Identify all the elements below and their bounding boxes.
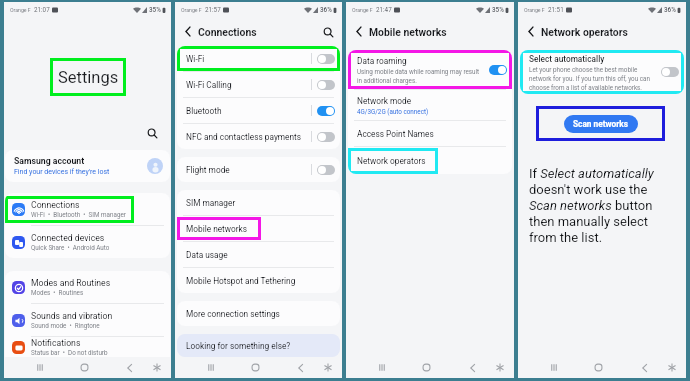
staticText: Quick Share • Android Auto [31, 244, 110, 251]
button[interactable]: Home [413, 357, 440, 378]
button[interactable]: Toggle [661, 67, 679, 77]
staticText: Sounds and vibration [31, 311, 113, 321]
staticText: 21:07 [34, 6, 50, 13]
button[interactable]: Notifications [5, 337, 170, 357]
staticText: Modes and Routines [31, 278, 111, 288]
staticText: Orange F [181, 7, 202, 13]
staticText: Network operators [357, 156, 426, 166]
staticText: Orange F [10, 7, 31, 13]
staticText: Find your devices if they're lost [14, 168, 110, 176]
staticText: Notifications [31, 338, 81, 348]
staticText: 21:57 [205, 6, 221, 13]
staticText: Using mobile data while roaming may resu… [357, 68, 485, 84]
button[interactable]: Toggle [317, 106, 335, 116]
button[interactable]: Connections [5, 193, 170, 225]
staticText: NFC and contactless payments [186, 132, 311, 142]
button[interactable]: Flight mode [177, 157, 340, 182]
button[interactable]: Home [585, 357, 612, 378]
staticText: Wi-Fi [186, 54, 311, 64]
button[interactable]: Modes and Routines [5, 271, 170, 303]
button[interactable]: Sounds and vibration [5, 304, 170, 336]
button[interactable]: Mobile networks [177, 216, 340, 241]
staticText: Access Point Names [357, 129, 434, 139]
button[interactable]: Recents [540, 357, 567, 378]
button[interactable]: Search [145, 126, 159, 140]
button[interactable]: Wi-Fi Calling [177, 72, 340, 97]
button[interactable]: Select automatically [520, 50, 684, 94]
staticText: Status bar • Do not disturb [31, 349, 108, 356]
staticText: Data roaming [357, 56, 407, 66]
button[interactable]: Back [523, 24, 538, 39]
button[interactable]: SIM manager [177, 190, 340, 215]
button[interactable]: Bluetooth [177, 98, 340, 123]
button[interactable]: Recents [26, 357, 53, 378]
staticText: Mobile networks [186, 224, 248, 234]
button[interactable]: Back [180, 24, 195, 39]
staticText: Sound mode • Ringtone [31, 322, 100, 329]
button[interactable]: Samsung account [5, 150, 170, 182]
staticText: Scan networks [573, 119, 629, 129]
button[interactable]: Accessibility [486, 357, 513, 378]
staticText: Orange F [352, 7, 373, 13]
staticText: 35% [492, 6, 504, 13]
button[interactable]: Back [631, 357, 658, 378]
staticText: 36% [664, 6, 676, 13]
button[interactable]: Connected devices [5, 226, 170, 258]
button[interactable]: Back [287, 357, 314, 378]
staticText: Network operators [541, 26, 628, 38]
staticText: 4G/3G/2G (auto connect) [357, 108, 429, 115]
button[interactable]: Toggle [489, 65, 507, 75]
staticText: Mobile Hotspot and Tethering [186, 276, 296, 286]
button[interactable]: Mobile Hotspot and Tethering [177, 268, 340, 293]
button[interactable]: Data roaming [348, 50, 512, 89]
button[interactable]: Data usage [177, 242, 340, 267]
button[interactable]: Network mode [348, 90, 512, 120]
staticText: Samsung account [14, 156, 85, 166]
button[interactable]: Accessibility [143, 357, 170, 378]
staticText: 36% [320, 6, 332, 13]
button[interactable]: Accessibility [314, 357, 341, 378]
staticText: 21:51 [548, 6, 564, 13]
button[interactable]: Network operators [348, 147, 512, 174]
staticText: Data usage [186, 250, 228, 260]
button[interactable]: Looking for something else? [177, 334, 340, 357]
staticText: Settings [58, 68, 119, 87]
button[interactable]: Recents [368, 357, 395, 378]
staticText: Let your phone choose the best mobile ne… [529, 66, 657, 91]
button[interactable]: Back [351, 24, 366, 39]
staticText: Select automatically [529, 54, 605, 64]
staticText: Flight mode [186, 165, 311, 175]
button[interactable]: Home [71, 357, 98, 378]
staticText: Network mode [357, 96, 412, 106]
staticText: 21:47 [376, 6, 392, 13]
button[interactable]: Accessibility [658, 357, 685, 378]
staticText: Modes • Routines [31, 289, 84, 296]
staticText: Wi-Fi • Bluetooth • SIM manager [31, 211, 126, 218]
staticText: Looking for something else? [186, 341, 291, 351]
button[interactable]: Access Point Names [348, 121, 512, 146]
staticText: Bluetooth [186, 106, 311, 116]
button[interactable]: Back [459, 357, 486, 378]
button[interactable]: More connection settings [177, 301, 340, 326]
button[interactable]: Back [116, 357, 143, 378]
staticText: Mobile networks [369, 26, 447, 38]
staticText: SIM manager [186, 198, 236, 208]
button[interactable]: NFC and contactless payments [177, 124, 340, 149]
button[interactable]: Toggle [317, 80, 335, 90]
staticText: If Select automatically doesn't work use… [529, 166, 667, 245]
button[interactable]: Toggle [317, 132, 335, 142]
staticText: More connection settings [186, 309, 280, 319]
button[interactable]: Scan networks [564, 115, 638, 133]
button[interactable]: Search [321, 25, 335, 39]
staticText: Connections [31, 200, 80, 210]
button[interactable]: Toggle [317, 54, 335, 64]
button[interactable]: Recents [197, 357, 224, 378]
staticText: Wi-Fi Calling [186, 80, 311, 90]
staticText: 35% [149, 6, 161, 13]
staticText: Orange F [524, 7, 545, 13]
staticText: Connections [198, 26, 257, 38]
button[interactable]: Wi-Fi [177, 46, 340, 71]
staticText: Connected devices [31, 233, 105, 243]
button[interactable]: Toggle [317, 165, 335, 175]
button[interactable]: Home [242, 357, 269, 378]
